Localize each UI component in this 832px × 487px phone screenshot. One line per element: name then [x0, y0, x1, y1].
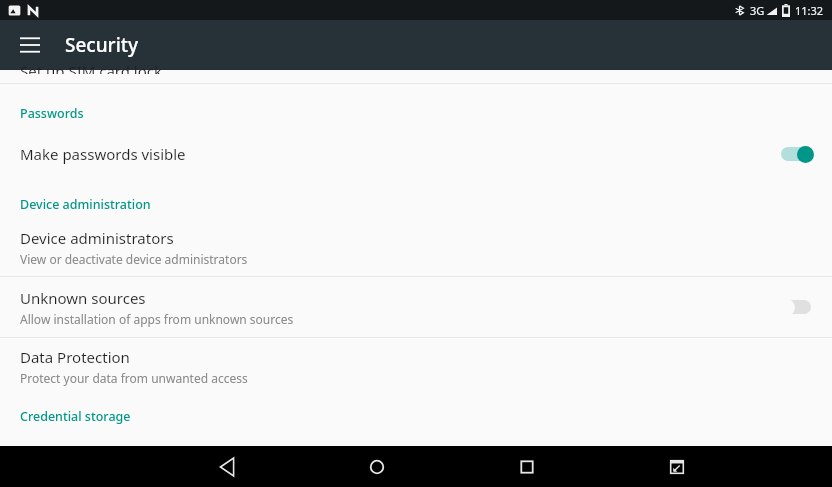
button[interactable]: Toggle: [778, 295, 814, 319]
button[interactable]: Back: [200, 446, 254, 487]
button[interactable]: Device administrators: [0, 219, 832, 276]
button[interactable]: Open navigation drawer: [8, 23, 52, 67]
button[interactable]: Data Protection: [0, 338, 832, 395]
staticText: Allow installation of apps from unknown …: [20, 311, 294, 327]
staticText: Set up SIM card lock: [20, 61, 163, 74]
button[interactable]: Set up SIM card lock: [0, 70, 832, 83]
staticText: Device administration: [20, 196, 151, 213]
staticText: Passwords: [20, 105, 84, 122]
staticText: Security: [65, 32, 139, 58]
staticText: View or deactivate device administrators: [20, 251, 248, 267]
staticText: Unknown sources: [20, 288, 146, 308]
staticText: Protect your data from unwanted access: [20, 370, 248, 386]
button[interactable]: Toggle: [778, 142, 814, 166]
staticText: 11:32: [795, 3, 824, 18]
button[interactable]: Unknown sources: [0, 277, 832, 337]
button[interactable]: Make passwords visible: [0, 128, 832, 180]
staticText: Data Protection: [20, 347, 130, 367]
staticText: Credential storage: [20, 408, 131, 425]
button[interactable]: Recent apps: [500, 446, 554, 487]
staticText: 3G: [750, 3, 765, 18]
button[interactable]: Resize window: [650, 446, 704, 487]
button[interactable]: Home: [350, 446, 404, 487]
staticText: Device administrators: [20, 228, 174, 248]
staticText: Make passwords visible: [20, 144, 186, 164]
